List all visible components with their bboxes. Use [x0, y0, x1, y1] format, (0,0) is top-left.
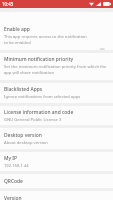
- button[interactable]: Version: [0, 191, 113, 200]
- button[interactable]: Enable app: [95, 46, 105, 52]
- staticText: About desktop version: [4, 140, 48, 146]
- button[interactable]: Minimum notification priority: [0, 53, 113, 80]
- button[interactable]: QRCode: [0, 174, 113, 188]
- button[interactable]: My IP: [0, 152, 113, 171]
- staticText: Enable app: [4, 26, 30, 33]
- staticText: Desktop version: [4, 132, 42, 139]
- button[interactable]: Enable app: [0, 12, 113, 50]
- button[interactable]: License information and code: [0, 106, 113, 125]
- staticText: 192.168.1.44: [4, 163, 29, 169]
- staticText: QRCode: [4, 178, 23, 185]
- staticText: 10:45: [2, 1, 14, 7]
- staticText: Blacklisted Apps: [4, 86, 43, 93]
- staticText: License information and code: [4, 109, 74, 116]
- button[interactable]: Desktop version: [0, 128, 113, 149]
- staticText: GNU General Public License 3: [4, 117, 62, 123]
- staticText: Minimum notification priority: [4, 56, 74, 63]
- staticText: My IP: [4, 155, 18, 162]
- staticText: Ignore notifications from selected apps: [4, 94, 81, 100]
- staticText: This app requires access to the notifica…: [4, 34, 91, 46]
- staticText: Set the minimum notification priority fr…: [4, 64, 107, 76]
- button[interactable]: Blacklisted Apps: [0, 83, 113, 103]
- staticText: Version: [4, 195, 22, 200]
